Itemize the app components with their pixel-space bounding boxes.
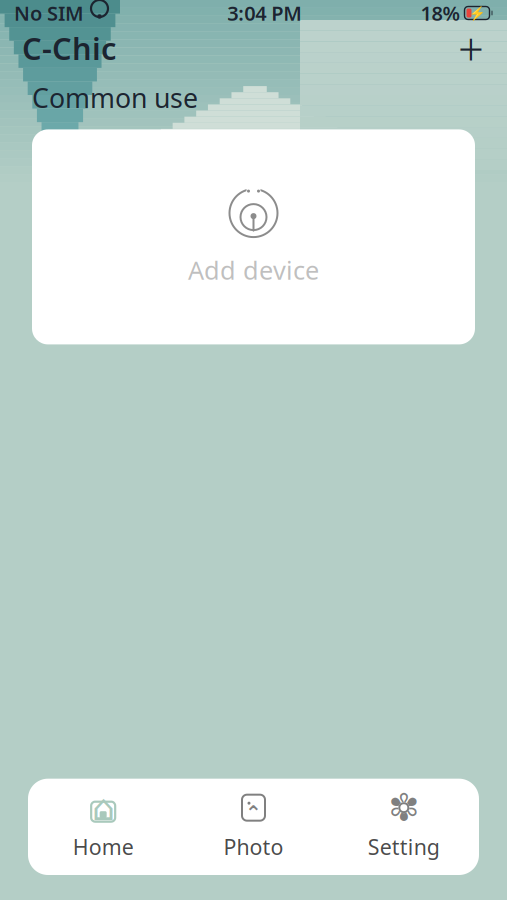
staticText: Common use [32, 80, 198, 115]
staticText: 3:04 PM [227, 0, 302, 26]
button[interactable]: Add device [32, 129, 475, 344]
button[interactable]: ⌃ [178, 779, 329, 875]
button[interactable]: ⌂ [28, 779, 178, 875]
button[interactable]: Add [449, 26, 493, 70]
staticText: ⚡ [468, 5, 485, 21]
staticText: + [458, 18, 484, 78]
staticText: ✾ [388, 786, 419, 829]
staticText: No SIM [14, 0, 84, 26]
staticText: Setting [368, 833, 440, 861]
staticText: Home [73, 833, 134, 861]
staticText: ⌂ [92, 787, 115, 828]
staticText: C-Chic [22, 28, 116, 68]
staticText: Photo [223, 833, 283, 861]
staticText: Add device [188, 253, 319, 287]
staticText: ⌃ [245, 802, 262, 824]
button[interactable]: ✾ [329, 779, 479, 875]
staticText: 18% [420, 0, 460, 26]
